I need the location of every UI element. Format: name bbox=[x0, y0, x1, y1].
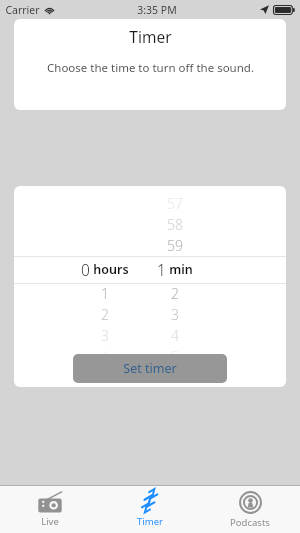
staticText: 59 bbox=[167, 236, 183, 255]
staticText: Timer bbox=[129, 26, 172, 47]
staticText: Podcasts bbox=[230, 516, 270, 529]
button[interactable]: 1 bbox=[135, 256, 215, 283]
button[interactable]: 0 bbox=[65, 256, 145, 283]
staticText: 58 bbox=[167, 215, 183, 234]
other: Podcasts bbox=[239, 491, 262, 514]
staticText: Carrier bbox=[5, 3, 40, 17]
staticText: min bbox=[169, 261, 193, 278]
staticText: Set timer bbox=[123, 360, 177, 377]
other: Live radio bbox=[37, 491, 63, 513]
staticText: hours bbox=[93, 261, 129, 278]
staticText: 3 bbox=[101, 326, 109, 345]
button[interactable]: Set timer bbox=[73, 354, 227, 383]
staticText: 2 bbox=[171, 284, 179, 303]
staticText: 1 bbox=[157, 259, 166, 280]
staticText: Timer bbox=[137, 515, 163, 528]
other: Sleep timer bbox=[138, 491, 162, 513]
staticText: Choose the time to turn off the sound. bbox=[47, 60, 254, 76]
staticText: 4 bbox=[171, 326, 179, 345]
button[interactable]: Sleep timer bbox=[100, 486, 200, 533]
staticText: 5 bbox=[171, 347, 179, 366]
staticText: 1 bbox=[101, 284, 109, 303]
staticText: 3:35 PM bbox=[137, 3, 177, 17]
button[interactable]: Podcasts bbox=[200, 486, 300, 533]
staticText: Live bbox=[41, 515, 59, 528]
staticText: 57 bbox=[167, 194, 183, 213]
staticText: 2 bbox=[101, 305, 109, 324]
button[interactable]: Live radio bbox=[0, 486, 100, 533]
staticText: 4 bbox=[101, 347, 109, 366]
staticText: 0 bbox=[81, 259, 90, 280]
staticText: 3 bbox=[171, 305, 179, 324]
